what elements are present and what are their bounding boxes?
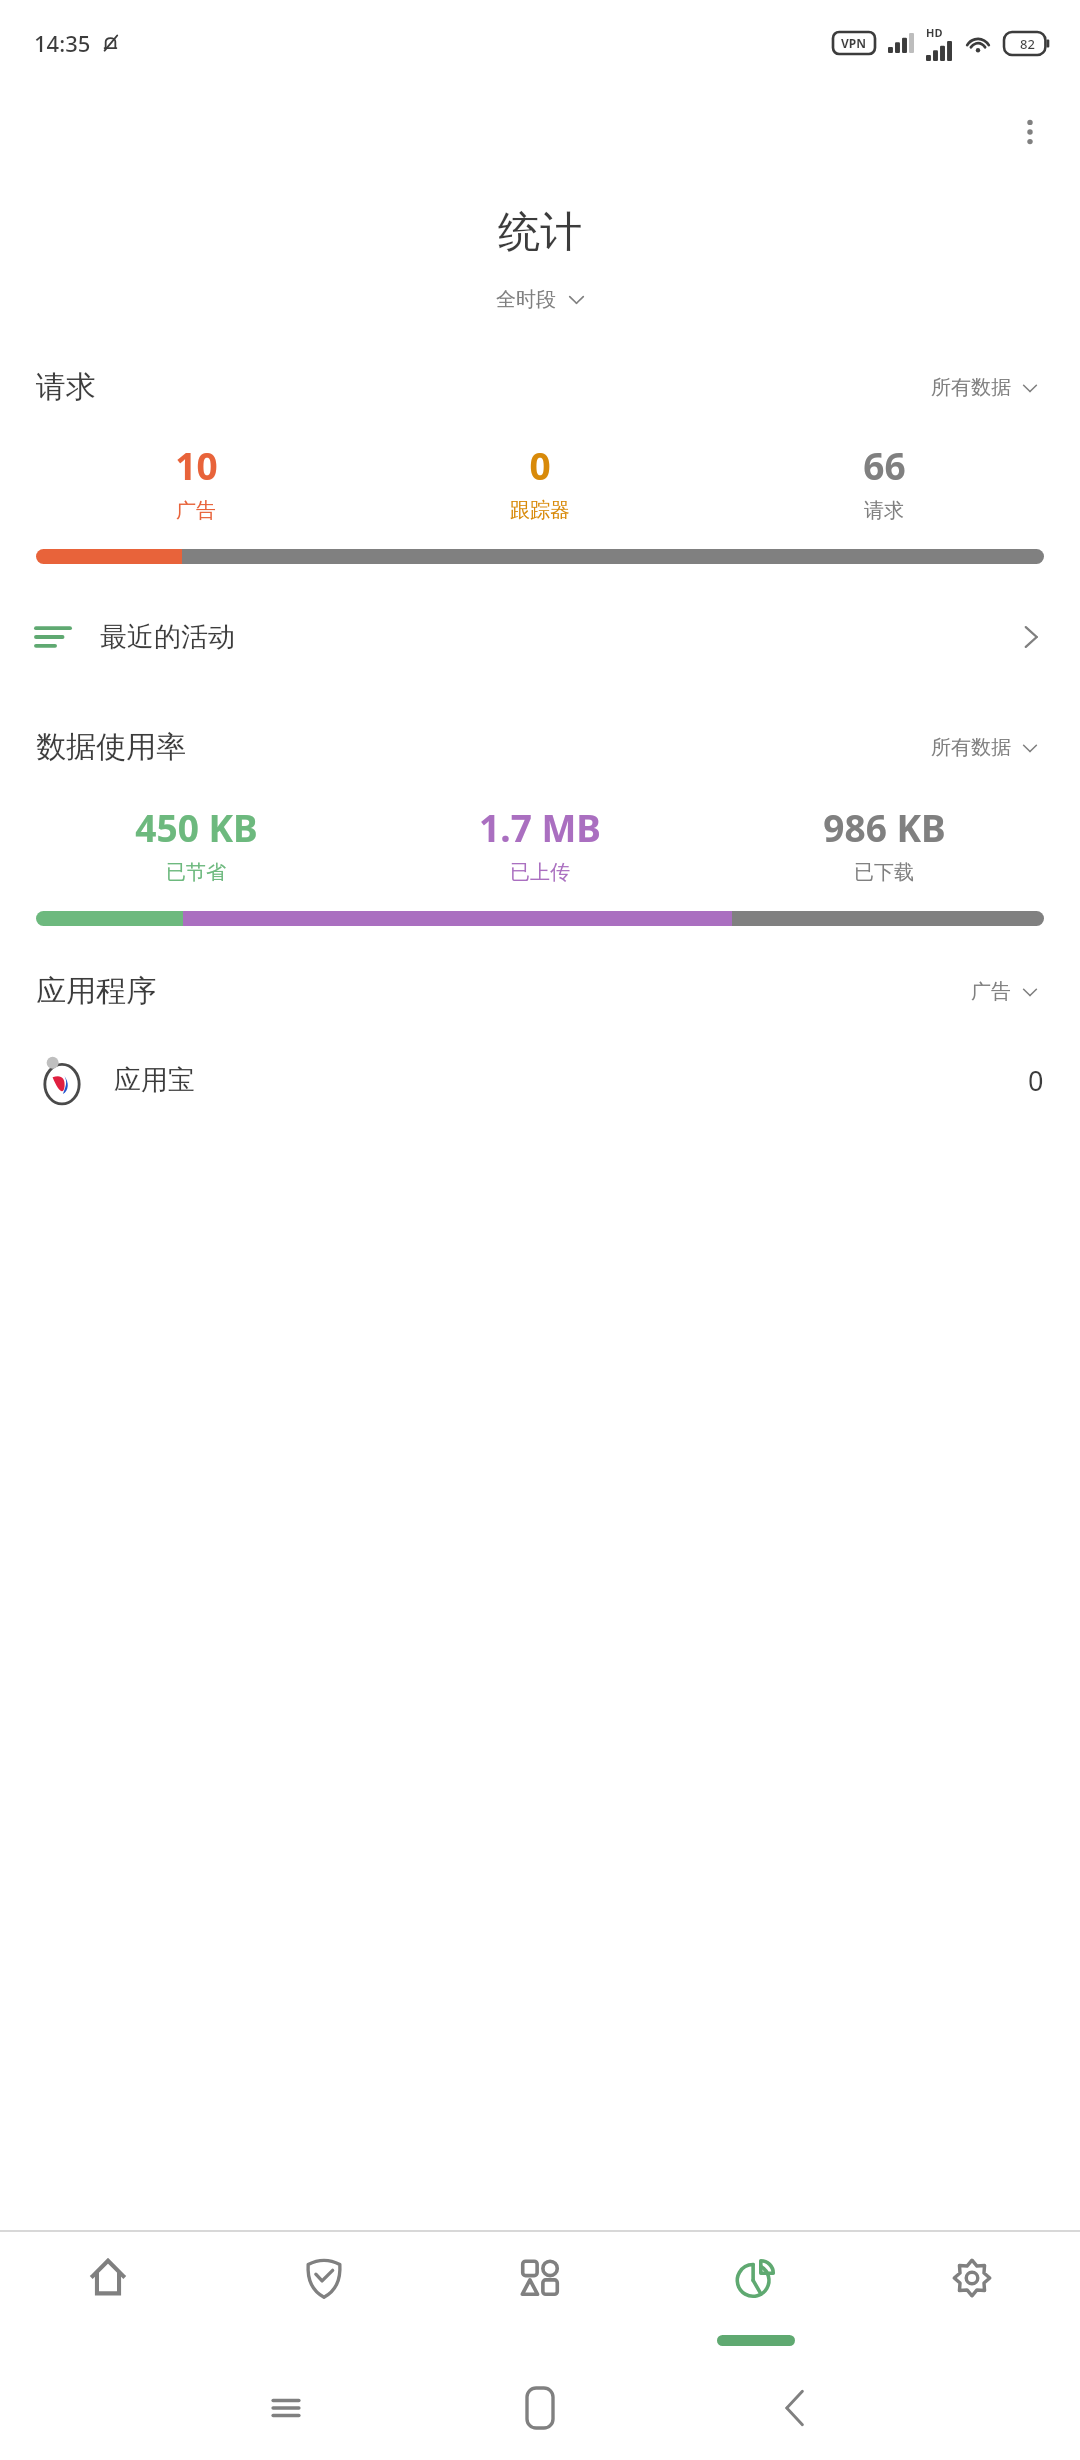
button[interactable]: 广告 [965, 973, 1044, 1010]
staticText: 数据使用率 [36, 728, 186, 766]
staticText: 0 [1028, 1062, 1044, 1099]
staticText: 已节省 [166, 860, 226, 885]
staticText: HD [926, 25, 943, 40]
staticText: 1.7 MB [479, 802, 601, 852]
staticText: 82 [1020, 35, 1035, 53]
staticText: 跟踪器 [510, 498, 570, 523]
button[interactable]: Back [667, 2356, 921, 2460]
button[interactable]: Stats [648, 2232, 864, 2356]
staticText: 广告 [176, 498, 216, 523]
staticText: 已下载 [854, 860, 914, 885]
staticText: 请求 [864, 498, 904, 523]
staticText: 已上传 [510, 860, 570, 885]
staticText: 0 [529, 440, 551, 490]
staticText: 10 [175, 440, 218, 490]
staticText: 最近的活动 [100, 620, 235, 654]
staticText: 广告 [971, 979, 1011, 1004]
staticText: 应用宝 [114, 1063, 195, 1097]
button[interactable]: Protection [216, 2232, 432, 2356]
staticText: 986 KB [823, 802, 946, 852]
staticText: 全时段 [496, 287, 556, 312]
button[interactable]: 所有数据 [925, 729, 1044, 766]
button[interactable]: 最近的活动 [0, 608, 1080, 666]
staticText: 450 KB [135, 802, 258, 852]
staticText: 66 [863, 440, 906, 490]
button[interactable]: 所有数据 [925, 369, 1044, 406]
button[interactable]: 全时段 [486, 281, 595, 318]
button[interactable]: Home [413, 2356, 667, 2460]
button[interactable]: More options [1002, 104, 1058, 160]
button[interactable]: Apps [432, 2232, 648, 2356]
staticText: 请求 [36, 368, 96, 406]
button[interactable]: Recent apps [159, 2356, 413, 2460]
staticText: 14:35 [34, 28, 91, 58]
button[interactable]: 应用宝 [0, 1044, 1080, 1116]
staticText: 统计 [498, 206, 582, 259]
staticText: 所有数据 [931, 375, 1011, 400]
staticText: 所有数据 [931, 735, 1011, 760]
button[interactable]: Settings [864, 2232, 1080, 2356]
staticText: 应用程序 [36, 972, 156, 1010]
button[interactable]: Home [0, 2232, 216, 2356]
staticText: VPN [841, 35, 867, 51]
